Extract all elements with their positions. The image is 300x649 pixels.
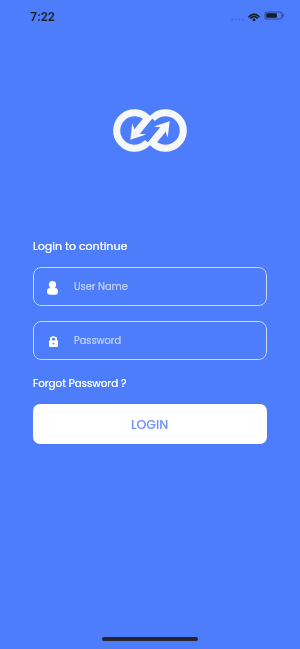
staticText: User Name [74, 280, 128, 294]
staticText: LOGIN [131, 416, 169, 433]
staticText: 7:22 [30, 9, 56, 24]
button[interactable]: LOGIN [33, 404, 267, 444]
staticText: Login to continue [33, 238, 128, 253]
button[interactable]: Password field [33, 321, 267, 360]
staticText: Password [74, 334, 122, 348]
button[interactable]: Forgot Password ? [33, 376, 127, 390]
button[interactable]: User name field [33, 267, 267, 306]
staticText: Forgot Password ? [33, 376, 127, 390]
